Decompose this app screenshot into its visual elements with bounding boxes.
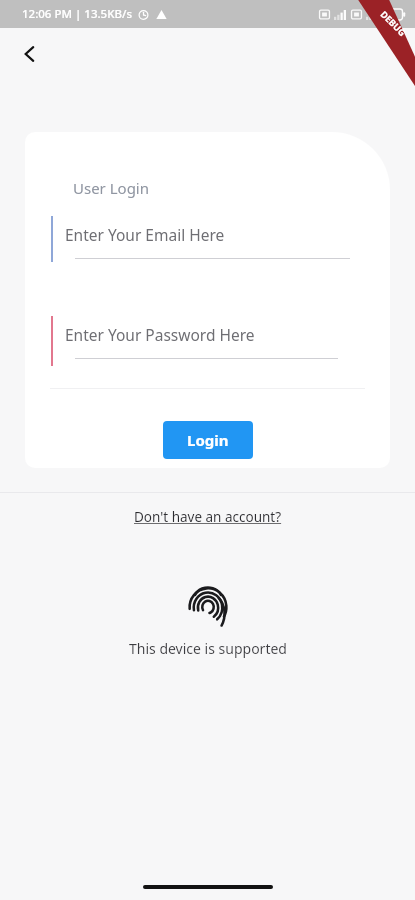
button[interactable]: Login xyxy=(163,421,253,459)
staticText: 12:06 PM | 13.5KB/s xyxy=(22,6,132,22)
button[interactable]: Enter Your Password Here xyxy=(25,316,390,366)
staticText: DEBUG xyxy=(378,8,409,38)
staticText: Enter Your Password Here xyxy=(65,324,255,345)
staticText: User Login xyxy=(73,178,150,198)
button[interactable]: Back xyxy=(8,32,52,76)
staticText: Enter Your Email Here xyxy=(65,224,225,245)
staticText: Don't have an account? xyxy=(134,508,282,526)
staticText: This device is supported xyxy=(129,639,287,658)
button[interactable]: Enter Your Email Here xyxy=(25,216,390,262)
staticText: Login xyxy=(187,430,229,450)
button[interactable]: Don't have an account? xyxy=(124,504,292,530)
button[interactable]: Fingerprint authentication xyxy=(185,581,231,627)
